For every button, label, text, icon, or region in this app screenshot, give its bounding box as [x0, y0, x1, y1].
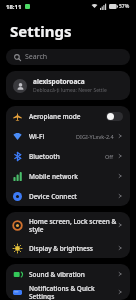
staticText: 57%: [119, 3, 130, 10]
button[interactable]: Bluetooth: [6, 146, 130, 166]
button[interactable]: alexispotoroaca: [6, 71, 130, 100]
staticText: 18:11: [6, 3, 22, 11]
staticText: Display & brightness: [29, 244, 117, 253]
button[interactable]: Notifications & Quick Settings: [6, 284, 130, 300]
staticText: DIGI-YLxvk-2.4: [76, 133, 114, 140]
staticText: Off: [105, 153, 114, 160]
staticText: Aeroplane mode: [29, 112, 106, 121]
button[interactable]: Home screen, Lock screen & style: [6, 212, 130, 238]
button[interactable]: Display & brightness: [6, 238, 130, 258]
button[interactable]: Sound & vibration: [6, 264, 130, 284]
staticText: alexispotoroaca: [33, 77, 85, 86]
staticText: Debloacă-ți lumea: Never Settle: [33, 87, 107, 94]
staticText: Mobile network: [29, 172, 117, 181]
staticText: Home screen, Lock screen & style: [29, 217, 117, 234]
staticText: Settings: [10, 21, 72, 41]
button[interactable]: Device Connect: [6, 186, 130, 206]
staticText: Bluetooth: [29, 152, 105, 161]
button[interactable]: Aeroplane mode: [6, 106, 130, 126]
button[interactable]: Search: [6, 49, 130, 65]
staticText: Sound & vibration: [29, 270, 117, 279]
staticText: Device Connect: [29, 192, 117, 201]
staticText: Search: [25, 52, 48, 62]
staticText: Wi-Fi: [29, 132, 76, 141]
button[interactable]: Mobile network: [6, 166, 130, 186]
staticText: Notifications & Quick Settings: [29, 284, 117, 300]
button[interactable]: Wi-Fi: [6, 126, 130, 146]
button[interactable]: Aeroplane mode toggle: [106, 112, 123, 121]
